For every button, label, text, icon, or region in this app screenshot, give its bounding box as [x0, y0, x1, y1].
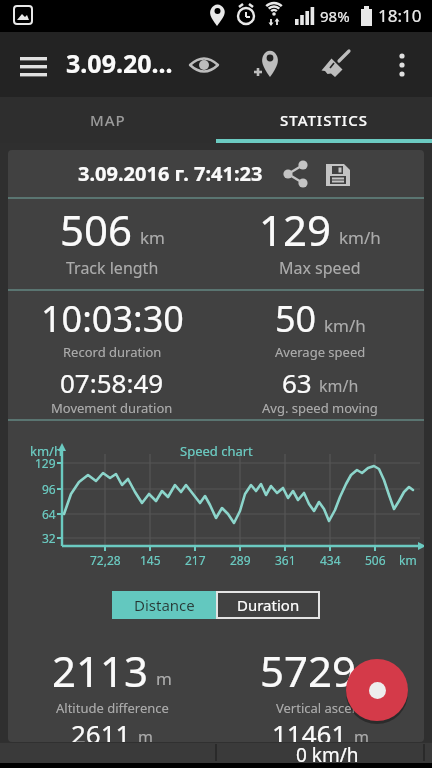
staticText: 64: [42, 506, 56, 522]
staticText: 96: [42, 481, 56, 497]
staticText: Record duration: [63, 343, 162, 361]
staticText: 98%: [320, 6, 350, 26]
button[interactable]: STATISTICS: [216, 97, 432, 143]
staticText: Distance: [134, 595, 195, 615]
staticText: 63: [282, 365, 312, 400]
staticText: MAP: [90, 110, 126, 130]
staticText: Duration: [237, 595, 300, 615]
button[interactable]: Distance: [112, 591, 216, 619]
staticText: STATISTICS: [280, 110, 368, 130]
button[interactable]: [321, 157, 355, 191]
staticText: km: [399, 552, 417, 568]
staticText: Movement duration: [51, 399, 173, 417]
staticText: 11461: [272, 716, 347, 742]
staticText: km/h: [319, 375, 359, 397]
staticText: 145: [140, 552, 161, 568]
staticText: 361: [275, 552, 296, 568]
button[interactable]: [12, 43, 56, 87]
staticText: m: [354, 726, 369, 742]
staticText: 07:58:49: [60, 365, 164, 400]
button[interactable]: [182, 43, 226, 87]
staticText: Altitude difference: [56, 699, 169, 717]
button[interactable]: [279, 157, 313, 191]
staticText: km/h: [324, 314, 366, 337]
button[interactable]: [246, 43, 290, 87]
staticText: Avg. speed moving: [262, 399, 378, 417]
staticText: 289: [230, 552, 251, 568]
staticText: m: [156, 667, 172, 690]
staticText: 0 km/h: [296, 742, 359, 763]
staticText: m: [138, 726, 153, 742]
staticText: 506: [365, 552, 386, 568]
staticText: 10:03:30: [41, 294, 184, 343]
staticText: m: [364, 667, 380, 690]
staticText: Max speed: [279, 257, 361, 279]
staticText: Vertical ascent: [276, 699, 365, 717]
staticText: Track length: [66, 257, 159, 279]
staticText: 5729: [260, 642, 357, 699]
staticText: 434: [320, 552, 341, 568]
staticText: 129: [259, 201, 332, 258]
staticText: 217: [185, 552, 206, 568]
staticText: km/h: [30, 442, 62, 460]
button[interactable]: MAP: [0, 97, 216, 143]
staticText: 18:10: [378, 4, 422, 27]
staticText: 3.09.2016 г. 7:41:23: [78, 160, 263, 187]
staticText: 32: [42, 530, 56, 546]
staticText: 129: [35, 455, 56, 471]
staticText: km/h: [339, 226, 381, 249]
staticText: Speed chart: [180, 442, 253, 460]
staticText: 2611: [71, 716, 131, 742]
staticText: Average speed: [275, 343, 366, 361]
staticText: 2113: [52, 642, 149, 699]
staticText: 3.09.20...: [66, 46, 173, 80]
staticText: km: [140, 226, 165, 249]
button[interactable]: [314, 43, 358, 87]
button[interactable]: Duration: [216, 591, 320, 619]
button[interactable]: [380, 43, 424, 87]
staticText: 50: [275, 294, 317, 343]
button[interactable]: [346, 659, 408, 721]
staticText: 506: [60, 201, 133, 258]
staticText: 72,28: [90, 552, 121, 568]
